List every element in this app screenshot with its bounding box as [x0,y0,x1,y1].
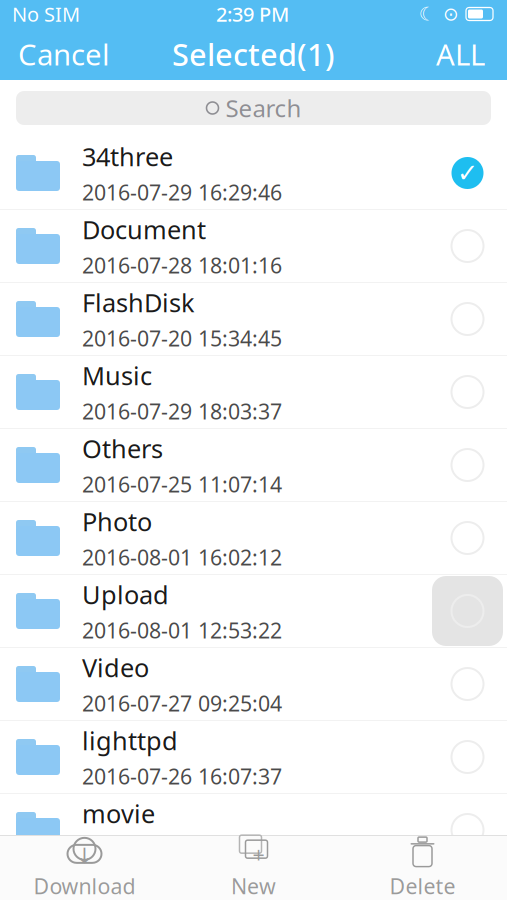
staticText: Cancel [18,34,110,73]
staticText: 2016-07-25 11:07:14 [82,470,282,498]
staticText: + [252,840,264,868]
staticText: lighttpd [82,723,178,757]
staticText: Document [82,212,206,246]
button[interactable]: Others [0,429,507,502]
staticText: ALL [436,34,485,73]
staticText: Selected(1) [172,34,335,74]
staticText: 2016-07-29 18:03:37 [82,397,282,425]
staticText: 2016-08-01 12:53:22 [82,616,282,644]
staticText: Download [33,872,135,900]
button[interactable]: + [169,836,338,900]
staticText: Video [82,650,149,684]
staticText: 2016-07-26 16:07:37 [82,762,282,790]
button[interactable]: Upload [0,575,507,648]
staticText: 2016-07-27 09:25:04 [82,689,282,717]
button[interactable]: ↓ [0,836,169,900]
button[interactable]: Photo [0,502,507,575]
staticText: Delete [389,872,455,900]
staticText: No SIM [12,1,80,27]
staticText: Music [82,358,152,392]
staticText: ☾ [419,3,436,25]
staticText: movie [82,796,155,830]
staticText: ↓ [75,844,93,868]
button[interactable]: 34three [0,137,507,210]
staticText: 2:39 PM [216,1,289,27]
button[interactable]: Search [0,91,507,125]
staticText: 2016-07-29 16:29:46 [82,178,282,206]
staticText: Upload [82,577,169,611]
staticText: Others [82,431,163,465]
staticText: New [231,872,276,900]
staticText: ⊙ [443,3,459,25]
staticText: 2016-07-24 10:12:08 [82,835,282,863]
staticText: 2016-08-01 16:02:12 [82,543,282,571]
staticText: 2016-07-28 18:01:16 [82,251,282,279]
button[interactable]: Delete [338,836,507,900]
button[interactable]: Music [0,356,507,429]
staticText: ✓ [457,159,478,187]
button[interactable]: movie [0,794,507,867]
staticText: Photo [82,504,152,538]
staticText: FlashDisk [82,285,195,319]
staticText: 2016-07-20 15:34:45 [82,324,282,352]
button[interactable]: FlashDisk [0,283,507,356]
button[interactable]: lighttpd [0,721,507,794]
button[interactable]: Video [0,648,507,721]
staticText: Search [225,92,301,124]
button[interactable]: ALL [436,24,507,83]
button[interactable]: Document [0,210,507,283]
staticText: 34three [82,139,173,173]
button[interactable]: Cancel [0,24,110,83]
